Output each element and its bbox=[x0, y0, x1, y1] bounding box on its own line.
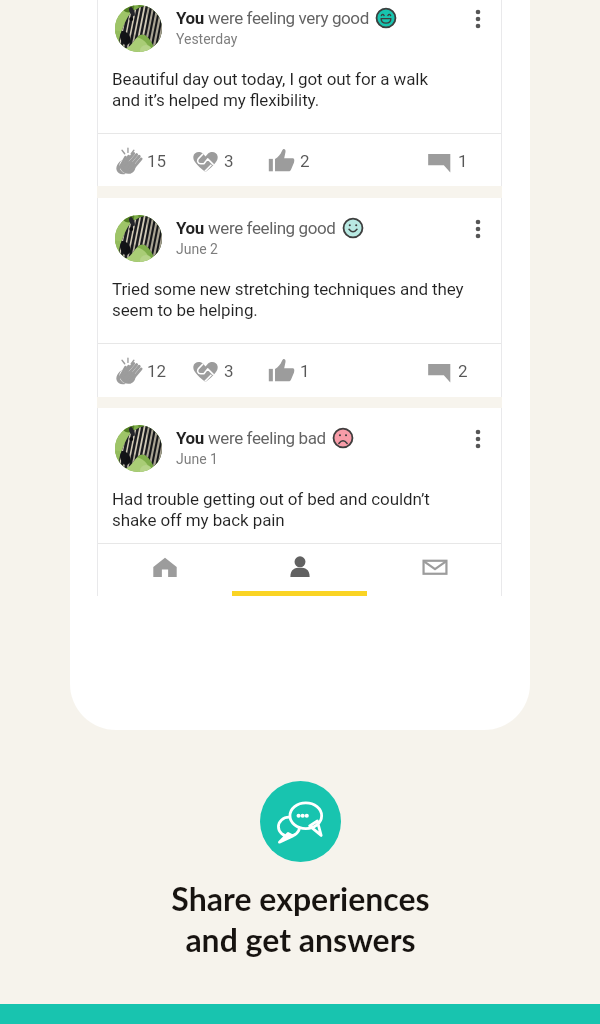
staticText: were feeling bad bbox=[208, 428, 326, 448]
staticText: Beautiful day out today, I got out for a… bbox=[112, 69, 428, 111]
staticText: Share experiences bbox=[171, 879, 430, 917]
button[interactable]: Community chat bbox=[260, 781, 341, 862]
staticText: June 2 bbox=[176, 241, 218, 257]
button[interactable]: 3 bbox=[192, 351, 234, 390]
button[interactable]: More options bbox=[461, 422, 495, 456]
staticText: June 1 bbox=[176, 451, 218, 467]
button[interactable]: 2 bbox=[426, 351, 468, 390]
button[interactable]: 1 bbox=[268, 351, 310, 390]
staticText: 1 bbox=[458, 151, 468, 171]
staticText: You bbox=[176, 218, 208, 238]
staticText: and get answers bbox=[185, 920, 416, 958]
button[interactable]: 1 bbox=[426, 141, 468, 180]
staticText: You bbox=[176, 8, 208, 28]
button[interactable]: More options bbox=[461, 212, 495, 246]
staticText: You bbox=[176, 428, 208, 448]
button[interactable]: Messages bbox=[367, 544, 502, 596]
button[interactable]: 15 bbox=[115, 141, 167, 180]
staticText: Yesterday bbox=[176, 31, 238, 47]
staticText: 3 bbox=[224, 361, 234, 381]
button[interactable]: 12 bbox=[115, 351, 167, 390]
staticText: 1 bbox=[300, 361, 310, 381]
staticText: 3 bbox=[224, 151, 234, 171]
staticText: Had trouble getting out of bed and could… bbox=[112, 489, 430, 531]
staticText: were feeling good bbox=[208, 218, 336, 238]
staticText: were feeling very good bbox=[208, 8, 369, 28]
staticText: Tried some new stretching techniques and… bbox=[112, 279, 464, 321]
button[interactable]: 3 bbox=[192, 141, 234, 180]
staticText: 2 bbox=[300, 151, 310, 171]
button[interactable]: Profile bbox=[232, 544, 367, 596]
staticText: 2 bbox=[458, 361, 468, 381]
button[interactable]: Home bbox=[97, 544, 232, 596]
button[interactable]: More options bbox=[461, 2, 495, 36]
button[interactable]: 2 bbox=[268, 141, 310, 180]
staticText: 15 bbox=[147, 151, 167, 171]
staticText: 12 bbox=[147, 361, 167, 381]
